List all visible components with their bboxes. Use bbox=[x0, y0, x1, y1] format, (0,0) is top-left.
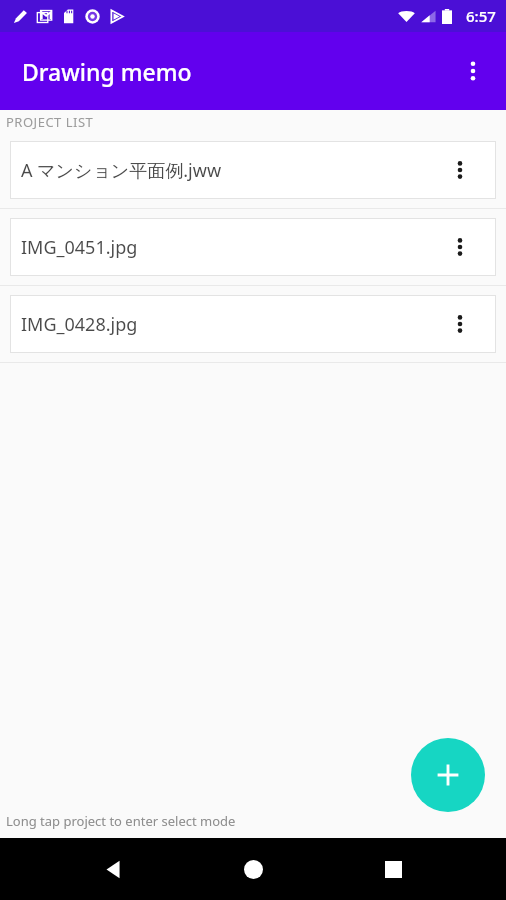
button[interactable]: A マンション平面例.jww bbox=[10, 141, 496, 199]
button[interactable]: Add project bbox=[411, 738, 485, 812]
button[interactable]: Item menu bbox=[440, 227, 480, 267]
button[interactable]: Recent apps bbox=[367, 843, 419, 895]
button[interactable]: IMG_0428.jpg bbox=[10, 295, 496, 353]
staticText: Long tap project to enter select mode bbox=[6, 812, 236, 830]
button[interactable]: Home bbox=[227, 843, 279, 895]
staticText: 6:57 bbox=[466, 6, 496, 26]
button[interactable]: Back bbox=[88, 843, 140, 895]
button[interactable]: IMG_0451.jpg bbox=[10, 218, 496, 276]
button[interactable]: More options bbox=[451, 49, 495, 93]
button[interactable]: Item menu bbox=[440, 304, 480, 344]
button[interactable]: Item menu bbox=[440, 150, 480, 190]
staticText: IMG_0428.jpg bbox=[21, 312, 138, 337]
staticText: PROJECT LIST bbox=[6, 113, 94, 131]
staticText: IMG_0451.jpg bbox=[21, 235, 138, 260]
staticText: Drawing memo bbox=[22, 56, 192, 87]
staticText: A マンション平面例.jww bbox=[21, 158, 222, 183]
